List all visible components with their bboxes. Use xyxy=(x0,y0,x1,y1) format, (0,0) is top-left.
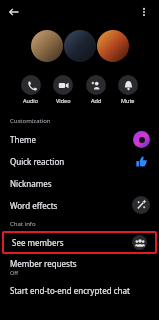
button[interactable]: Member requests xyxy=(0,254,159,279)
staticText: Quick reaction xyxy=(10,156,65,167)
button[interactable]: Video xyxy=(51,74,75,105)
staticText: Add xyxy=(91,97,102,104)
button[interactable]: Audio xyxy=(19,74,43,105)
button[interactable]: Quick reaction xyxy=(0,150,159,172)
staticText: Video xyxy=(56,97,71,104)
staticText: Customization xyxy=(10,117,51,125)
button[interactable]: More options xyxy=(134,2,154,22)
button[interactable]: Back xyxy=(4,2,24,22)
staticText: Start end-to-end encrypted chat xyxy=(10,285,130,296)
button[interactable]: Start end-to-end encrypted chat xyxy=(0,279,159,301)
staticText: Theme xyxy=(10,134,36,145)
staticText: Word effects xyxy=(10,200,58,211)
staticText: Audio xyxy=(23,97,39,104)
staticText: Mute xyxy=(121,97,135,104)
button[interactable]: See members xyxy=(2,231,157,254)
staticText: Member requests xyxy=(10,258,77,269)
button[interactable]: Word effects xyxy=(0,194,159,216)
staticText: See members xyxy=(12,237,64,248)
staticText: Off xyxy=(10,269,19,276)
button[interactable]: Add xyxy=(84,74,108,105)
button[interactable]: Mute xyxy=(116,74,140,105)
button[interactable]: Theme xyxy=(0,128,159,150)
staticText: Chat info xyxy=(10,220,36,228)
staticText: Nicknames xyxy=(10,178,52,189)
button[interactable]: Nicknames xyxy=(0,172,159,194)
